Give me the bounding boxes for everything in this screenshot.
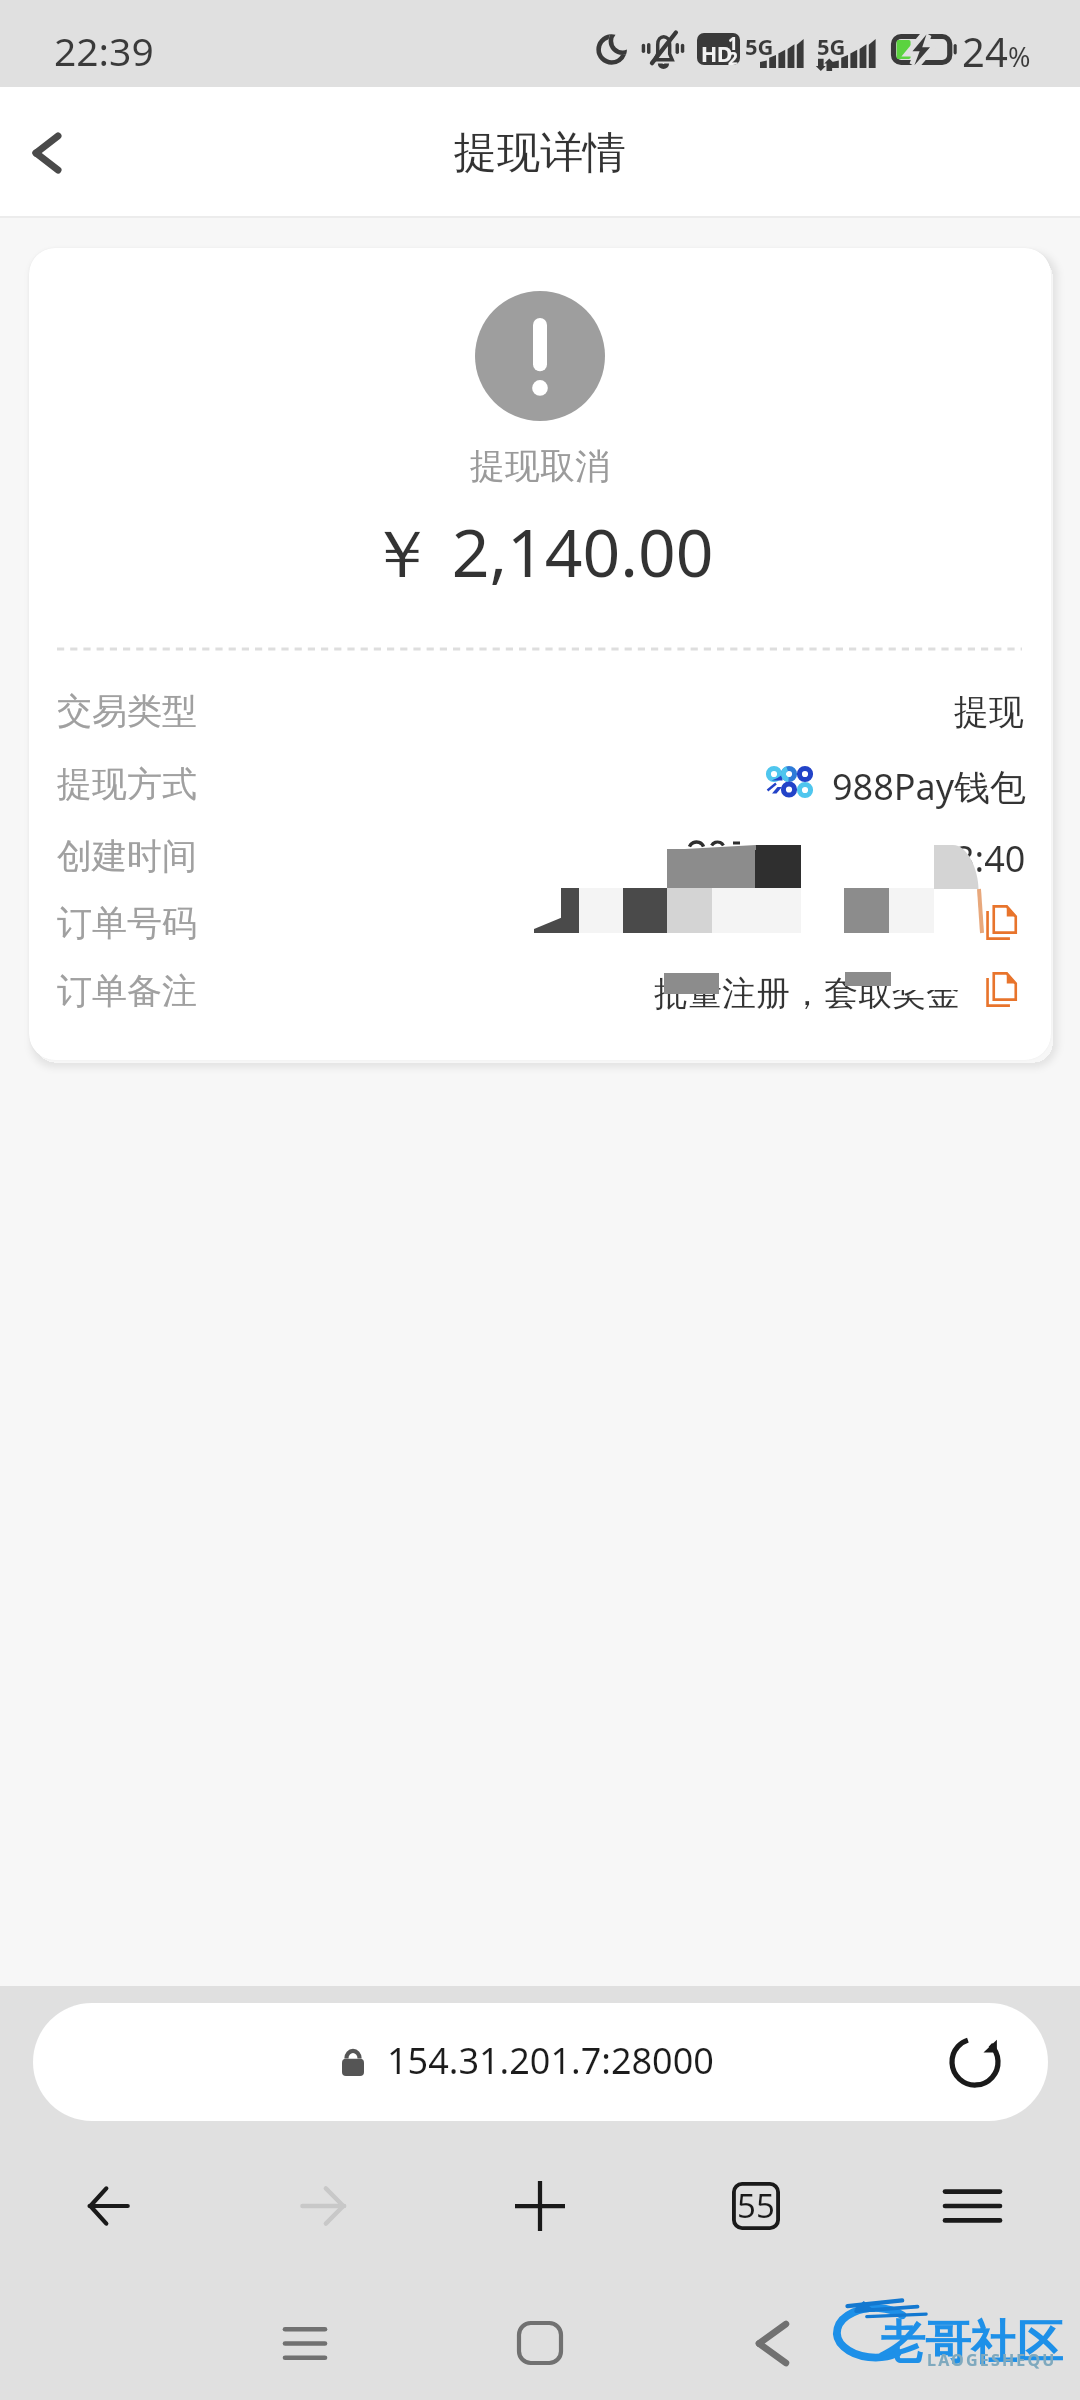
staticText: 5G xyxy=(745,31,774,61)
staticText: 154.31.201.7:28000 xyxy=(387,2036,714,2085)
button[interactable]: Menu xyxy=(864,2151,1080,2261)
staticText: 988Pay钱包 xyxy=(832,762,1027,811)
staticText: 5G xyxy=(817,31,846,61)
staticText: 创建时间 xyxy=(57,834,197,878)
button[interactable] xyxy=(33,2003,1048,2121)
staticText: 批量注册，套取奖金 xyxy=(654,972,960,1015)
button[interactable]: Reload xyxy=(947,2034,1003,2090)
staticText: 提现 xyxy=(954,690,1024,734)
staticText: 提现详情 xyxy=(454,126,626,180)
button[interactable]: Forward xyxy=(216,2151,432,2261)
staticText: 订单备注 xyxy=(57,969,197,1013)
button[interactable]: Back xyxy=(0,2151,216,2261)
staticText: 老哥社区 xyxy=(879,2314,1063,2372)
button[interactable]: Copy xyxy=(979,967,1023,1011)
staticText: 2 xyxy=(728,47,738,65)
staticText: 55 xyxy=(737,2183,775,2228)
button[interactable]: Back xyxy=(0,87,100,218)
staticText: 提现取消 xyxy=(29,444,1051,488)
staticText: LAOGESHEQU xyxy=(927,2349,1057,2371)
staticText: 订单号码 xyxy=(57,901,197,945)
staticText: 提现方式 xyxy=(57,762,197,806)
staticText: 22:39 xyxy=(54,24,154,77)
button[interactable]: Back xyxy=(727,2286,817,2400)
staticText: 24 xyxy=(962,24,1008,78)
button[interactable]: Home xyxy=(495,2286,585,2400)
button[interactable]: Copy xyxy=(979,900,1023,944)
staticText: 3:40 xyxy=(954,834,1026,883)
staticText: 1 xyxy=(728,33,738,55)
button[interactable]: Tabs xyxy=(648,2151,864,2261)
button[interactable]: Recents xyxy=(260,2286,350,2400)
staticText: 交易类型 xyxy=(57,689,197,733)
staticText: ￥ 2,140.00 xyxy=(30,506,1051,596)
staticText: % xyxy=(1008,38,1031,75)
staticText: HD xyxy=(701,40,733,65)
button[interactable]: New tab xyxy=(432,2151,648,2261)
